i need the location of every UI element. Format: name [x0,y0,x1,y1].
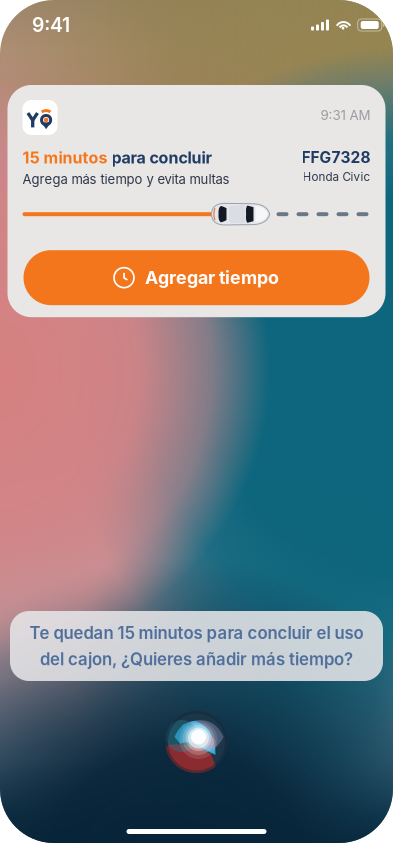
staticText: para concluir [111,148,212,167]
staticText: 15 minutos [22,148,111,167]
staticText: del cajon, ¿Quieres añadir más tiempo? [40,649,353,669]
button[interactable]: Agregar tiempo [23,250,369,305]
staticText: Te quedan 15 minutos para concluir el us… [29,623,363,643]
staticText: Honda Civic [302,170,370,184]
staticText: FFG7328 [301,148,370,167]
staticText: Agregar tiempo [145,267,279,288]
staticText: 9:31 AM [320,107,370,123]
staticText: Agrega más tiempo y evita multas [22,171,229,187]
staticText: 9:41 [32,13,70,37]
